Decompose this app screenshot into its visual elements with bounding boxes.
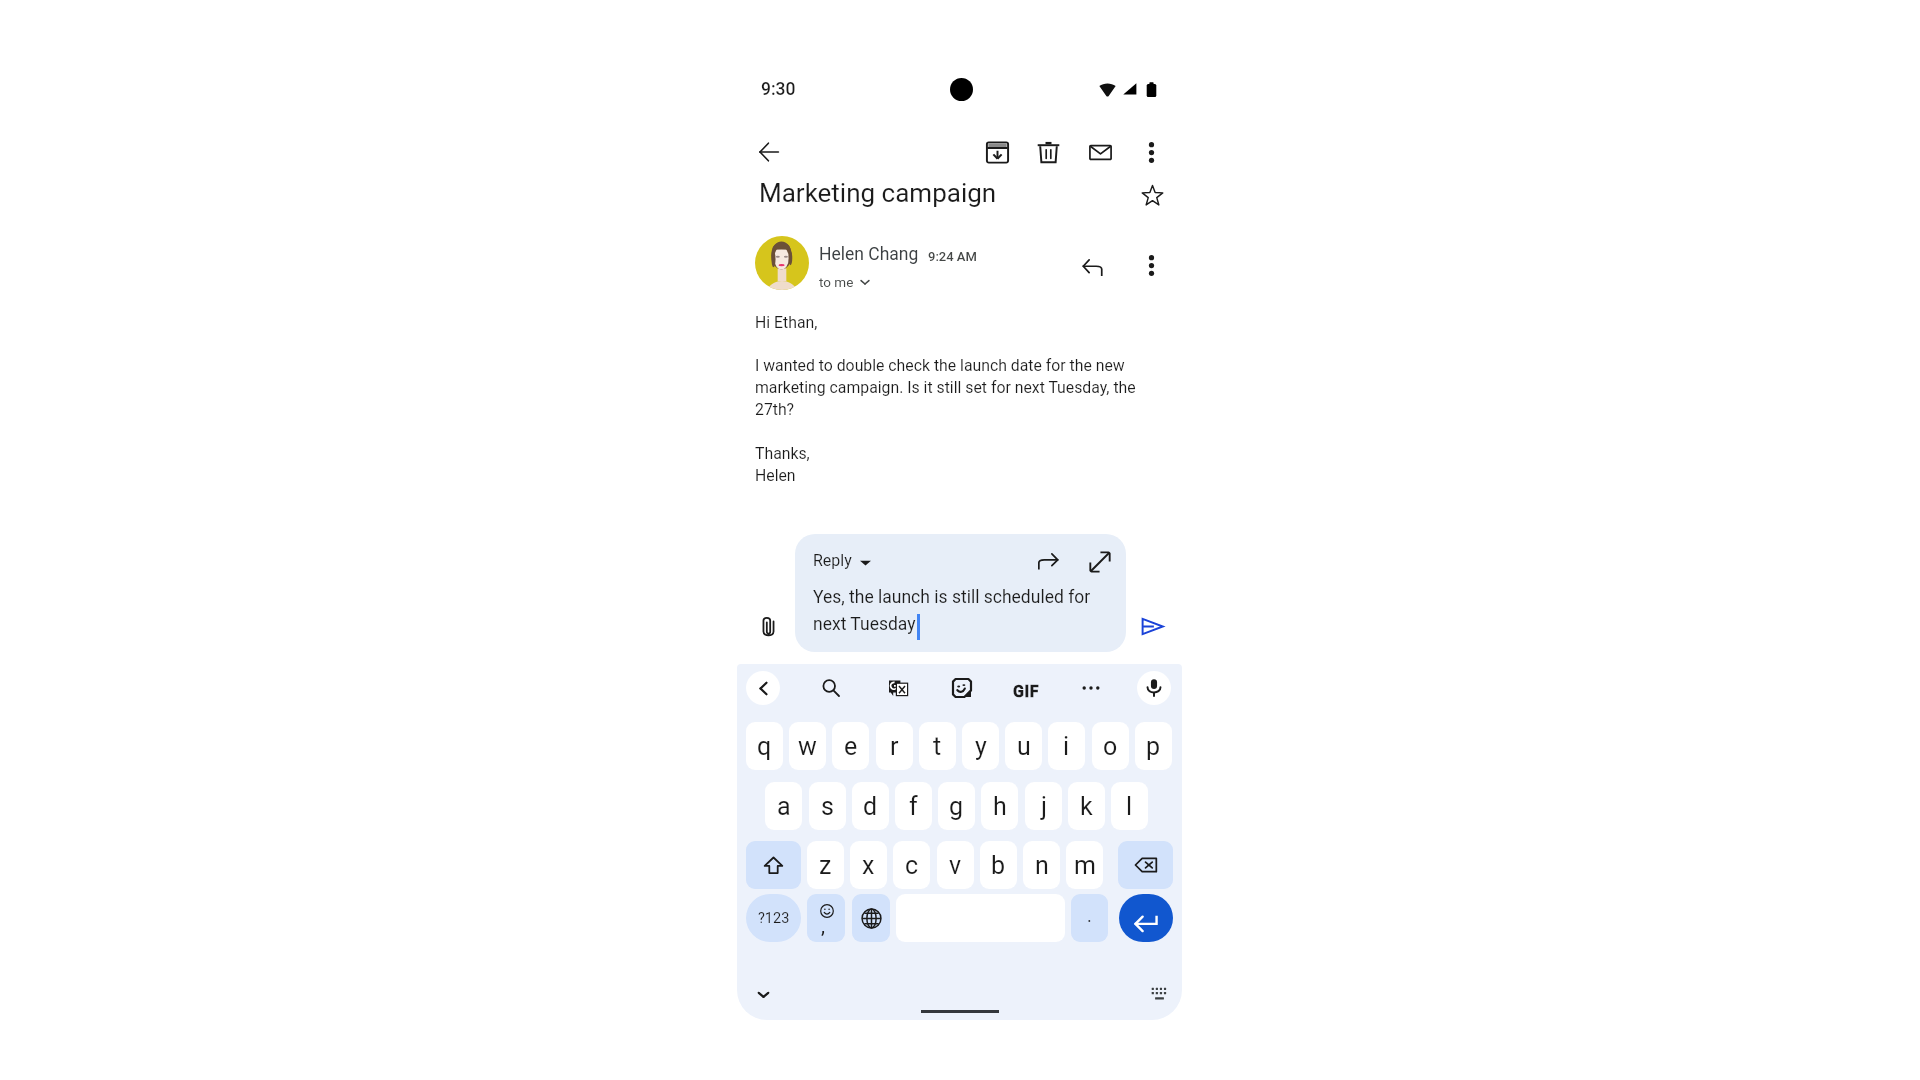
button[interactable]: h <box>981 782 1018 830</box>
staticText: , <box>821 916 825 937</box>
button[interactable]: m <box>1066 841 1103 889</box>
button[interactable]: ?123 <box>746 894 801 942</box>
staticText: k <box>1080 792 1093 821</box>
button[interactable]: More options <box>1134 135 1168 169</box>
staticText: ?123 <box>758 910 790 927</box>
button[interactable]: Enter <box>1119 894 1173 942</box>
button[interactable]: Send <box>1136 610 1168 642</box>
staticText: l <box>1126 792 1133 821</box>
staticText: x <box>862 851 875 880</box>
staticText: Reply <box>813 551 852 570</box>
staticText: 9:30 <box>761 79 796 100</box>
button[interactable]: Hide keyboard <box>748 979 778 1009</box>
button[interactable]: . <box>1071 894 1108 942</box>
button[interactable]: to me <box>819 274 872 290</box>
staticText: b <box>991 851 1006 880</box>
button[interactable]: Search <box>814 671 848 705</box>
button[interactable]: Back <box>746 671 780 705</box>
button[interactable]: u <box>1005 722 1042 770</box>
button[interactable]: Reply <box>1075 250 1109 284</box>
staticText: z <box>819 851 832 880</box>
button[interactable]: k <box>1068 782 1105 830</box>
staticText: g <box>949 792 964 821</box>
button[interactable]: n <box>1023 841 1060 889</box>
button[interactable]: y <box>962 722 999 770</box>
button[interactable]: q <box>746 722 783 770</box>
staticText: q <box>757 732 772 761</box>
staticText: m <box>1074 851 1096 880</box>
button[interactable]: s <box>809 782 846 830</box>
staticText: o <box>1103 732 1118 761</box>
button[interactable]: Attach file <box>752 610 784 642</box>
button[interactable]: GIF <box>1009 674 1043 708</box>
staticText: a <box>777 792 791 821</box>
button[interactable]: j <box>1025 782 1062 830</box>
button[interactable]: Reply <box>795 534 1126 652</box>
button[interactable]: z <box>807 841 844 889</box>
button[interactable]: Backspace <box>1118 841 1173 889</box>
button[interactable]: l <box>1111 782 1148 830</box>
button[interactable]: w <box>789 722 826 770</box>
button[interactable]: c <box>893 841 930 889</box>
staticText: 9:24 AM <box>928 249 977 264</box>
staticText: u <box>1017 732 1031 761</box>
staticText: n <box>1035 851 1049 880</box>
staticText: d <box>863 792 878 821</box>
staticText: i <box>1063 732 1070 761</box>
staticText: Marketing campaign <box>759 178 997 208</box>
button[interactable]: b <box>980 841 1017 889</box>
button[interactable]: p <box>1135 722 1172 770</box>
button[interactable]: Emoji <box>807 894 845 942</box>
staticText: . <box>1087 905 1092 926</box>
button[interactable]: r <box>876 722 913 770</box>
button[interactable]: Shift <box>746 841 801 889</box>
button[interactable]: g <box>938 782 975 830</box>
button[interactable]: Keyboard settings <box>1144 979 1174 1009</box>
button[interactable]: Star <box>1135 178 1169 212</box>
button[interactable]: More options <box>1134 248 1168 282</box>
button[interactable]: Translate <box>881 671 915 705</box>
staticText: s <box>821 792 834 821</box>
staticText: f <box>909 792 918 821</box>
button[interactable]: o <box>1092 722 1129 770</box>
button[interactable]: Marketing campaign <box>751 170 1131 214</box>
staticText: GIF <box>1013 682 1040 701</box>
button[interactable]: a <box>765 782 802 830</box>
staticText: w <box>798 732 817 761</box>
staticText: Hi Ethan, I wanted to double check the l… <box>755 313 1145 485</box>
button[interactable]: t <box>919 722 956 770</box>
button[interactable]: x <box>850 841 887 889</box>
button[interactable]: More <box>1074 671 1108 705</box>
button[interactable]: Helen Chang <box>819 244 977 265</box>
button[interactable]: Voice input <box>1137 671 1171 705</box>
staticText: to me <box>819 274 854 290</box>
button[interactable]: Back <box>752 135 786 169</box>
staticText: p <box>1146 732 1161 761</box>
button[interactable]: i <box>1048 722 1085 770</box>
button[interactable]: Forward <box>1034 548 1062 576</box>
staticText: c <box>905 851 919 880</box>
staticText: e <box>844 732 858 761</box>
staticText: v <box>949 851 962 880</box>
button[interactable]: Mark unread <box>1083 135 1117 169</box>
staticText: Helen Chang <box>819 244 919 265</box>
button[interactable]: d <box>852 782 889 830</box>
button[interactable]: Archive <box>980 135 1014 169</box>
staticText: h <box>993 792 1007 821</box>
button[interactable]: e <box>832 722 869 770</box>
button[interactable]: Delete <box>1031 135 1065 169</box>
staticText: Yes, the launch is still scheduled for n… <box>813 587 1103 634</box>
staticText: y <box>975 732 987 761</box>
staticText: j <box>1041 792 1047 821</box>
staticText: t <box>933 732 942 761</box>
staticText: r <box>890 732 899 761</box>
button[interactable]: Expand <box>1086 548 1114 576</box>
button[interactable]: f <box>895 782 932 830</box>
button[interactable]: Stickers <box>945 671 979 705</box>
button[interactable]: Helen Chang avatar <box>755 236 809 290</box>
button[interactable]: Change language <box>852 894 890 942</box>
button[interactable]: v <box>937 841 974 889</box>
